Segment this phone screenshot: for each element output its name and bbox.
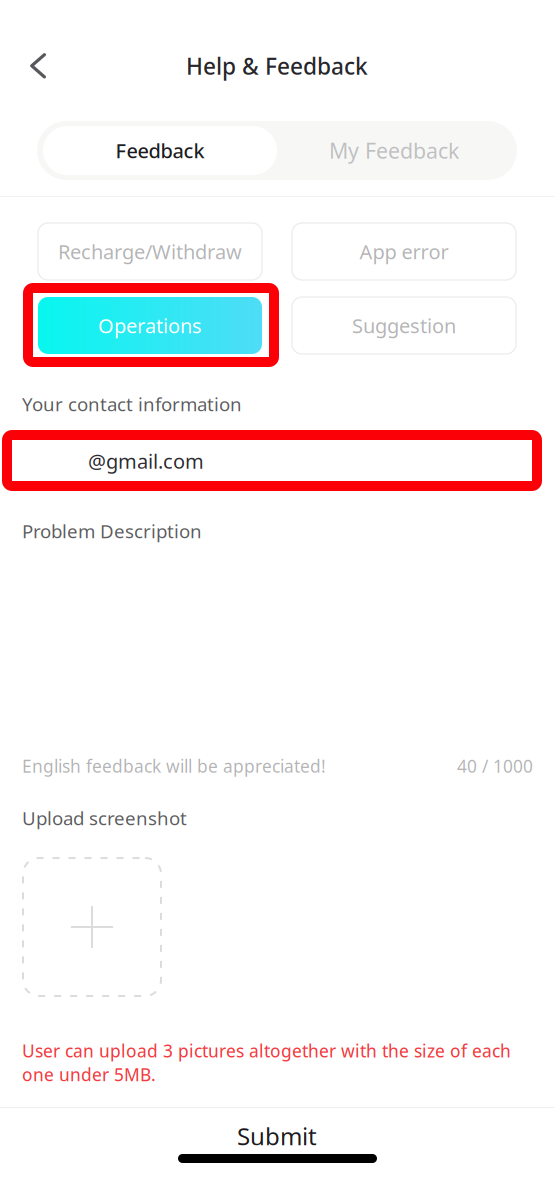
staticText: @gmail.com xyxy=(88,447,204,475)
button[interactable]: Submit xyxy=(0,1106,554,1166)
button[interactable]: Recharge/Withdraw xyxy=(38,223,262,280)
button[interactable]: Operations xyxy=(38,297,262,354)
staticText: Recharge/Withdraw xyxy=(58,238,242,265)
staticText: Feedback xyxy=(115,137,204,164)
staticText: Problem Description xyxy=(22,518,202,544)
staticText: Help & Feedback xyxy=(186,51,368,81)
button[interactable]: Suggestion xyxy=(292,297,516,354)
button[interactable]: App error xyxy=(292,223,516,280)
staticText: English feedback will be appreciated! xyxy=(22,754,326,778)
button[interactable]: Feedback xyxy=(43,126,277,175)
staticText: App error xyxy=(359,238,448,265)
staticText: User can upload 3 pictures altogether wi… xyxy=(22,1039,511,1086)
staticText: Upload screenshot xyxy=(22,805,187,831)
staticText: Submit xyxy=(237,1120,317,1152)
button[interactable]: Add screenshot xyxy=(22,857,162,997)
staticText: Suggestion xyxy=(352,312,456,339)
staticText: My Feedback xyxy=(329,136,459,165)
staticText: Operations xyxy=(98,312,202,339)
staticText: Your contact information xyxy=(22,391,242,417)
button[interactable]: My Feedback xyxy=(277,126,511,175)
button[interactable]: Back xyxy=(30,53,46,79)
staticText: 40 / 1000 xyxy=(457,754,533,778)
